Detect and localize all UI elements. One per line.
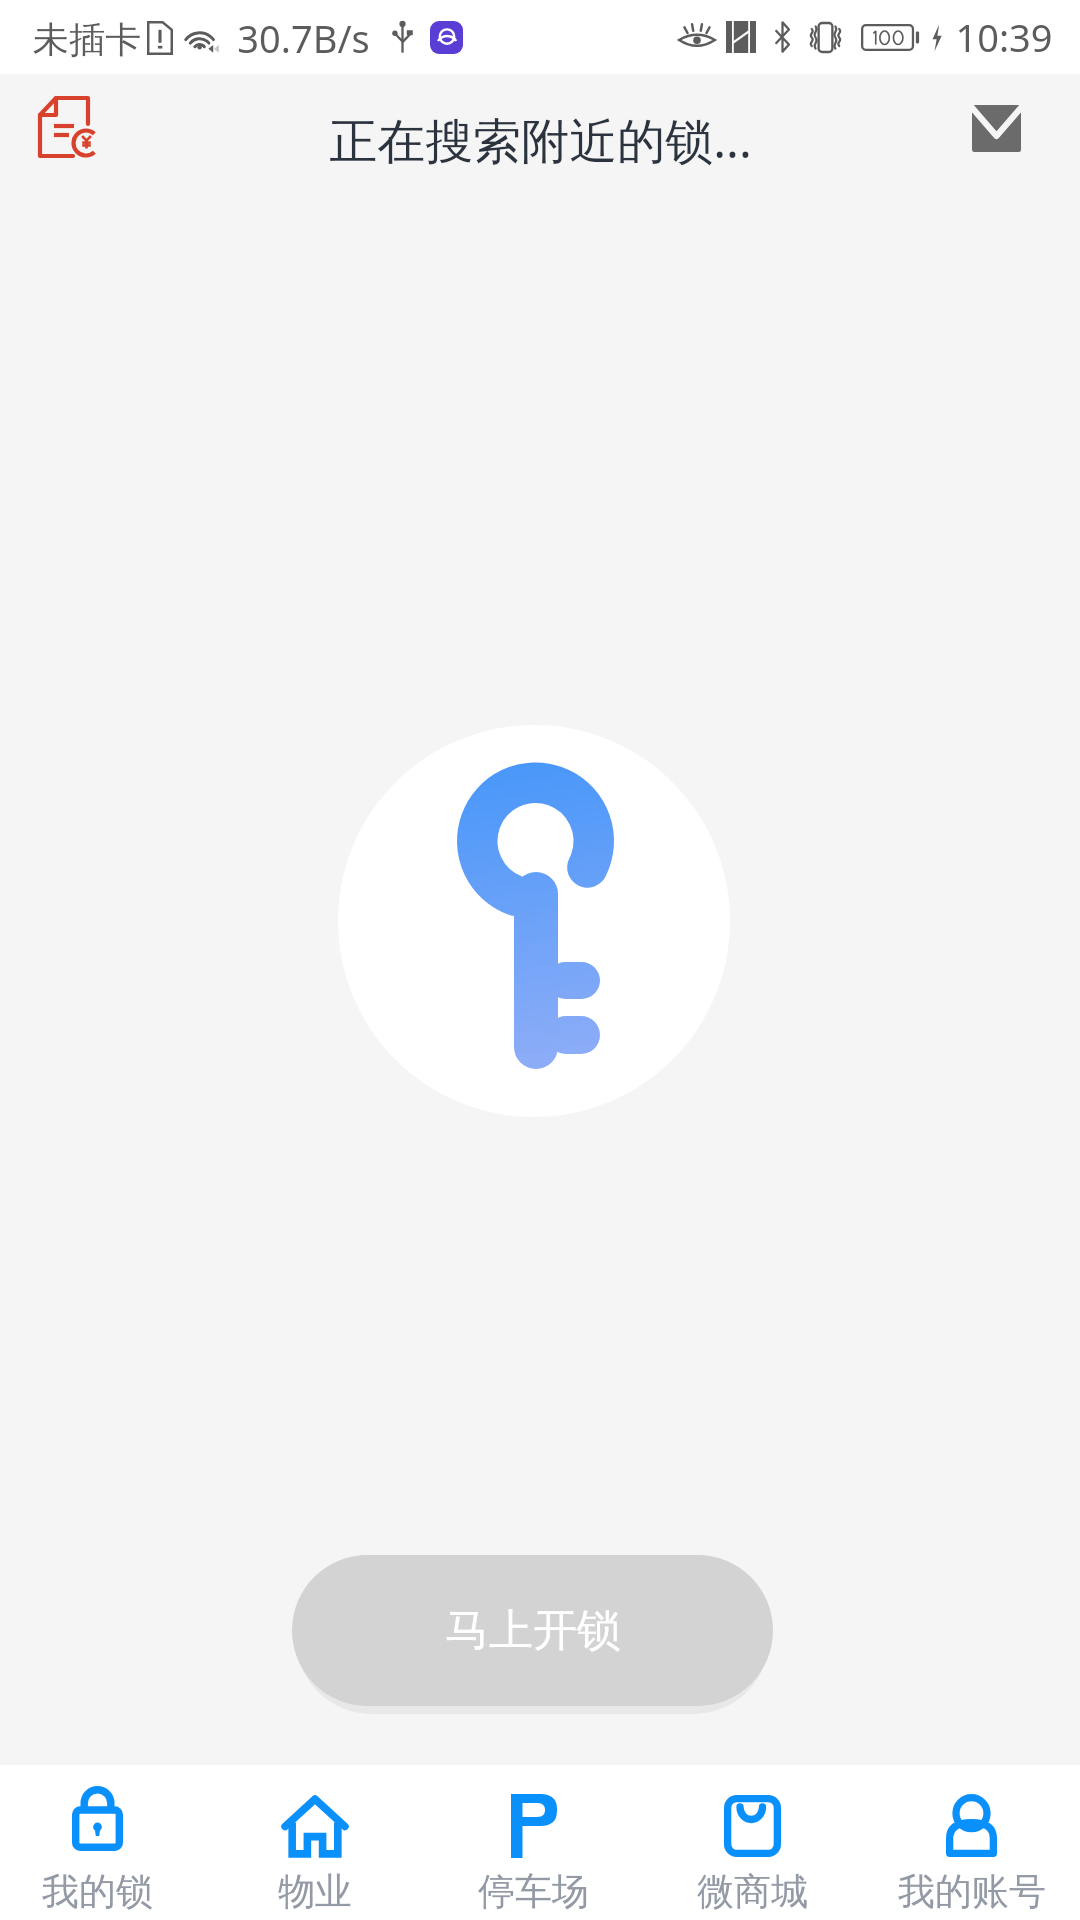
staticText: 微商城 (697, 1868, 808, 1915)
staticText: 停车场 (478, 1868, 589, 1915)
staticText: 物业 (278, 1868, 352, 1915)
button[interactable]: 微商城 (643, 1765, 862, 1920)
staticText: 我的账号 (898, 1868, 1046, 1915)
staticText: 正在搜索附近的锁... (329, 107, 752, 173)
staticText: 30.7B/s (237, 12, 370, 64)
button[interactable]: 停车场 (424, 1765, 643, 1920)
button[interactable]: 我的锁 (0, 1765, 206, 1920)
button[interactable]: Invoice (18, 79, 116, 177)
staticText: 未插卡 (33, 17, 141, 62)
button[interactable]: 我的账号 (862, 1765, 1080, 1920)
button[interactable]: 马上开锁 (292, 1555, 773, 1706)
staticText: 10:39 (955, 11, 1053, 63)
button[interactable]: 物业 (206, 1765, 424, 1920)
staticText: 我的锁 (42, 1868, 153, 1915)
staticText: 马上开锁 (445, 1603, 621, 1658)
button[interactable]: Messages (947, 79, 1045, 177)
